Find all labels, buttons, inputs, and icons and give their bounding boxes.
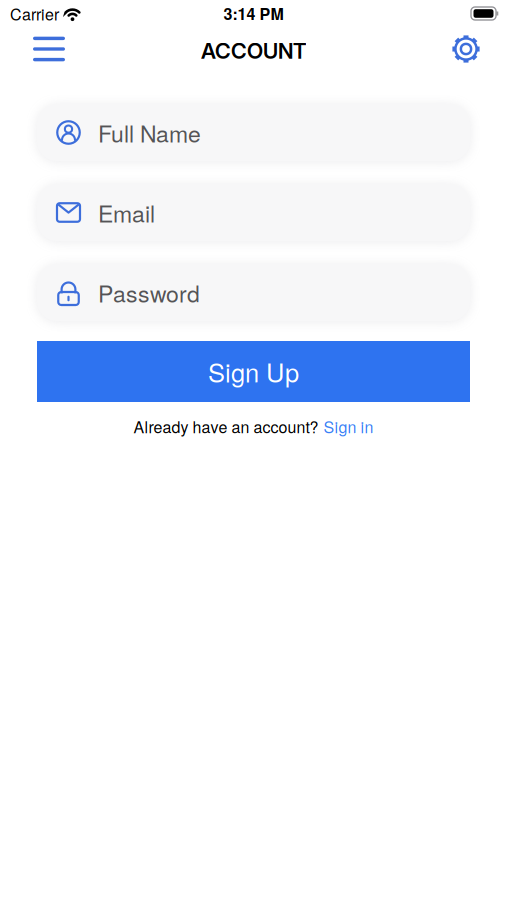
button[interactable]: Sign in: [323, 415, 373, 438]
textField[interactable]: Email: [37, 184, 470, 241]
textField[interactable]: Full Name: [37, 104, 470, 161]
staticText: Already have an account?: [133, 415, 318, 438]
staticText: 3:14 PM: [223, 2, 283, 25]
staticText: Email: [98, 196, 155, 229]
button[interactable]: Sign Up: [37, 341, 470, 402]
button[interactable]: Settings: [452, 35, 507, 63]
staticText: Password: [98, 276, 200, 309]
staticText: Sign in: [323, 415, 373, 438]
secureTextField[interactable]: Password: [37, 264, 470, 321]
staticText: Full Name: [98, 116, 201, 149]
staticText: Carrier: [10, 2, 59, 25]
button[interactable]: Menu: [0, 37, 65, 61]
staticText: ACCOUNT: [201, 38, 306, 64]
staticText: Sign Up: [208, 353, 299, 390]
